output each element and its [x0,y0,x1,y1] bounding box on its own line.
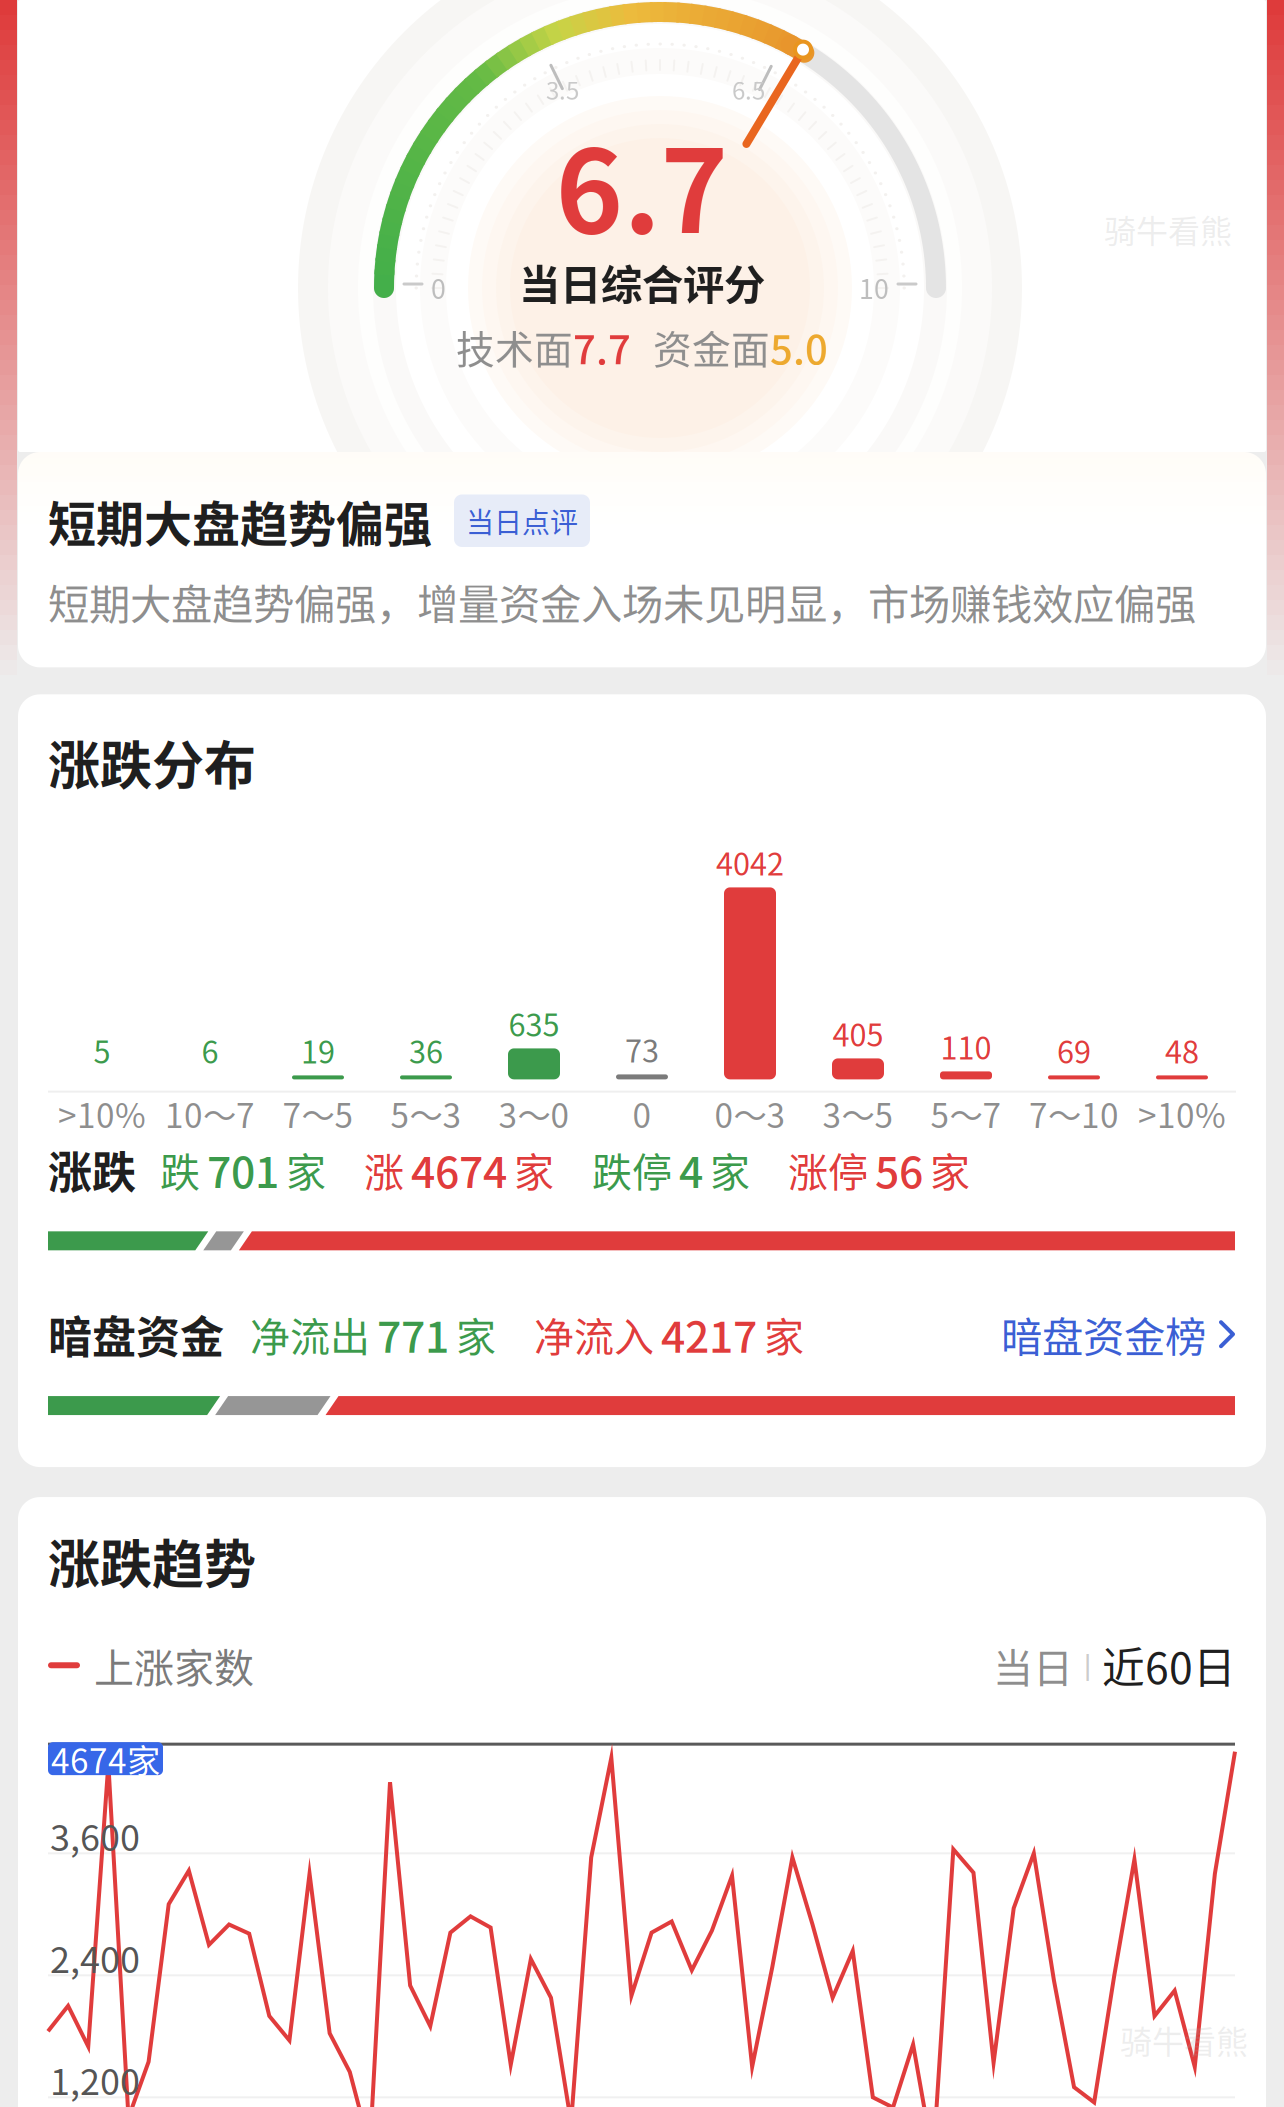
staticText: 近60日 [1102,1634,1236,1696]
staticText: 当日综合评分 [519,252,765,312]
staticText: 73 [625,1027,659,1071]
staticText: 1,200 [50,2053,140,2105]
staticText: 3,600 [50,1809,140,1861]
staticText: 涨跌分布 [48,724,256,800]
button[interactable]: 近60日 [1102,1634,1236,1696]
staticText: 3〜0 [498,1089,569,1138]
staticText: 4674家 [51,1734,160,1783]
staticText: 资金面 [653,319,770,375]
staticText: 6.5 [732,72,765,107]
staticText: 涨跌 [48,1138,136,1201]
staticText: 0〜3 [714,1089,785,1138]
staticText: 家 [764,1305,804,1363]
staticText: >10% [58,1089,146,1138]
staticText: 7〜5 [282,1089,353,1138]
staticText: 10〜7 [165,1089,255,1138]
staticText: 3.5 [546,72,579,107]
staticText: 56 [875,1139,923,1200]
staticText: 110 [940,1024,991,1068]
staticText: 0 [632,1089,651,1138]
staticText: 6.7 [555,100,728,266]
staticText: 家 [286,1140,326,1198]
staticText: 跌停 [592,1140,672,1198]
staticText: 4042 [716,840,784,884]
staticText: 19 [301,1028,335,1072]
staticText: 家 [710,1140,750,1198]
button[interactable]: 当日点评 [454,494,590,547]
staticText: 7.7 [573,318,631,376]
staticText: 净流出 [250,1305,370,1363]
staticText: 涨 [364,1140,404,1198]
staticText: 短期大盘趋势偏强，增量资金入场未见明显，市场赚钱效应偏强 [48,571,1196,631]
staticText: 4 [679,1139,703,1200]
staticText: 5 [93,1028,110,1072]
button[interactable]: 暗盘资金榜 [1001,1304,1236,1364]
staticText: 净流入 [534,1305,654,1363]
staticText: 7〜10 [1029,1089,1119,1138]
staticText: 10 [859,268,889,307]
staticText: 家 [930,1140,970,1198]
staticText: 当日点评 [466,500,578,541]
staticText: 48 [1165,1028,1199,1072]
staticText: 暗盘资金榜 [1001,1304,1206,1364]
staticText: 5〜3 [390,1089,461,1138]
staticText: 涨跌趋势 [48,1523,256,1598]
staticText: 丨 [1073,1644,1102,1686]
staticText: 技术面 [456,319,573,375]
staticText: >10% [1138,1089,1226,1138]
staticText: 骑牛看熊 [1104,206,1232,252]
staticText: 短期大盘趋势偏强 [48,486,432,555]
staticText: 上涨家数 [94,1636,254,1694]
staticText: 3〜5 [822,1089,893,1138]
staticText: 0 [431,268,446,307]
staticText: 暗盘资金 [48,1302,224,1366]
staticText: 家 [456,1305,496,1363]
staticText: 家 [514,1140,554,1198]
staticText: 771 [377,1303,449,1365]
staticText: 涨停 [788,1140,868,1198]
staticText: 5.0 [770,318,828,376]
staticText: 2,400 [50,1931,140,1983]
staticText: 405 [832,1011,883,1055]
button[interactable]: 当日 [993,1636,1073,1694]
staticText: 跌 [160,1140,200,1198]
staticText: 6 [201,1028,218,1072]
staticText: 骑牛看熊 [1120,2017,1248,2063]
staticText: 36 [409,1028,443,1072]
staticText: 当日 [993,1636,1073,1694]
staticText: 4217 [661,1303,757,1365]
staticText: 69 [1057,1028,1091,1072]
staticText: 5〜7 [930,1089,1001,1138]
staticText: 701 [207,1139,279,1200]
staticText: 4674 [411,1139,507,1200]
staticText: 635 [508,1001,559,1045]
